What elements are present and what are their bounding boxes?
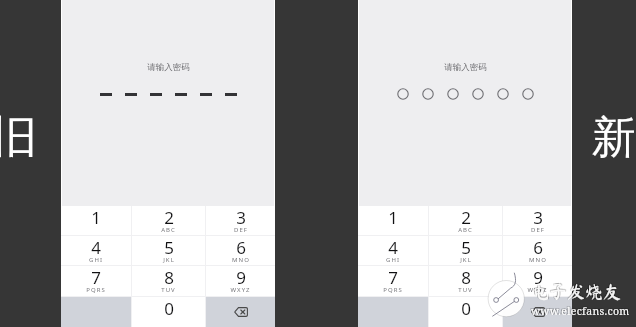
staticText: www.elecfans.com: [530, 304, 629, 318]
staticText: www.elecfans.com: [532, 304, 631, 318]
staticText: 电子发烧友: [530, 282, 620, 300]
staticText: 2: [164, 206, 174, 229]
button[interactable]: 1: [61, 206, 131, 235]
staticText: JKL: [163, 256, 175, 264]
button[interactable]: Delete: [503, 297, 572, 327]
staticText: www.elecfans.com: [530, 303, 629, 317]
staticText: 旧: [0, 110, 37, 165]
button[interactable]: 6: [206, 236, 275, 265]
button[interactable]: 4: [61, 236, 131, 265]
staticText: www.elecfans.com: [532, 303, 631, 317]
button[interactable]: 8: [132, 266, 205, 296]
staticText: WXYZ: [527, 286, 548, 294]
staticText: 3: [236, 206, 246, 229]
button[interactable]: 9: [206, 266, 275, 296]
staticText: ABC: [458, 226, 473, 234]
staticText: 电子发烧友: [531, 282, 621, 300]
staticText: GHI: [386, 256, 400, 264]
staticText: 4: [91, 236, 101, 259]
button[interactable]: 8: [429, 266, 502, 296]
staticText: 2: [461, 206, 471, 229]
button[interactable]: 7: [61, 266, 131, 296]
staticText: 1: [91, 206, 101, 229]
button[interactable]: 7: [358, 266, 428, 296]
button[interactable]: 1: [358, 206, 428, 235]
staticText: PQRS: [383, 286, 403, 294]
button[interactable]: 5: [429, 236, 502, 265]
button[interactable]: 3: [503, 206, 572, 235]
staticText: 1: [388, 206, 398, 229]
staticText: JKL: [460, 256, 472, 264]
button[interactable]: 6: [503, 236, 572, 265]
staticText: 请输入密码: [444, 62, 487, 73]
staticText: PQRS: [86, 286, 106, 294]
staticText: 8: [461, 266, 471, 289]
staticText: 新: [592, 110, 636, 165]
staticText: 5: [164, 236, 174, 259]
button[interactable]: 4: [358, 236, 428, 265]
staticText: MNO: [232, 256, 250, 264]
staticText: 7: [91, 266, 101, 289]
staticText: 4: [388, 236, 398, 259]
staticText: 电子发烧友: [532, 281, 622, 299]
staticText: 6: [236, 236, 246, 259]
staticText: ABC: [161, 226, 176, 234]
staticText: 0: [164, 297, 174, 320]
button[interactable]: 3: [206, 206, 275, 235]
staticText: TUV: [458, 286, 473, 294]
staticText: DEF: [531, 226, 545, 234]
button[interactable]: Delete: [206, 297, 275, 327]
staticText: 8: [164, 266, 174, 289]
staticText: 9: [533, 266, 543, 289]
staticText: WXYZ: [230, 286, 251, 294]
staticText: 请输入密码: [147, 62, 190, 73]
button[interactable]: 9: [503, 266, 572, 296]
button[interactable]: 0: [429, 297, 502, 327]
button[interactable]: 5: [132, 236, 205, 265]
staticText: www.elecfans.com: [531, 304, 630, 318]
button[interactable]: 2: [429, 206, 502, 235]
staticText: 9: [236, 266, 246, 289]
staticText: 0: [461, 297, 471, 320]
staticText: 3: [533, 206, 543, 229]
button[interactable]: 2: [132, 206, 205, 235]
staticText: 电子发烧友: [532, 282, 622, 300]
staticText: 5: [461, 236, 471, 259]
staticText: TUV: [161, 286, 176, 294]
staticText: 电子发烧友: [530, 281, 620, 299]
staticText: MNO: [529, 256, 547, 264]
staticText: GHI: [89, 256, 103, 264]
button[interactable]: 0: [132, 297, 205, 327]
staticText: 6: [533, 236, 543, 259]
staticText: DEF: [234, 226, 248, 234]
staticText: 7: [388, 266, 398, 289]
